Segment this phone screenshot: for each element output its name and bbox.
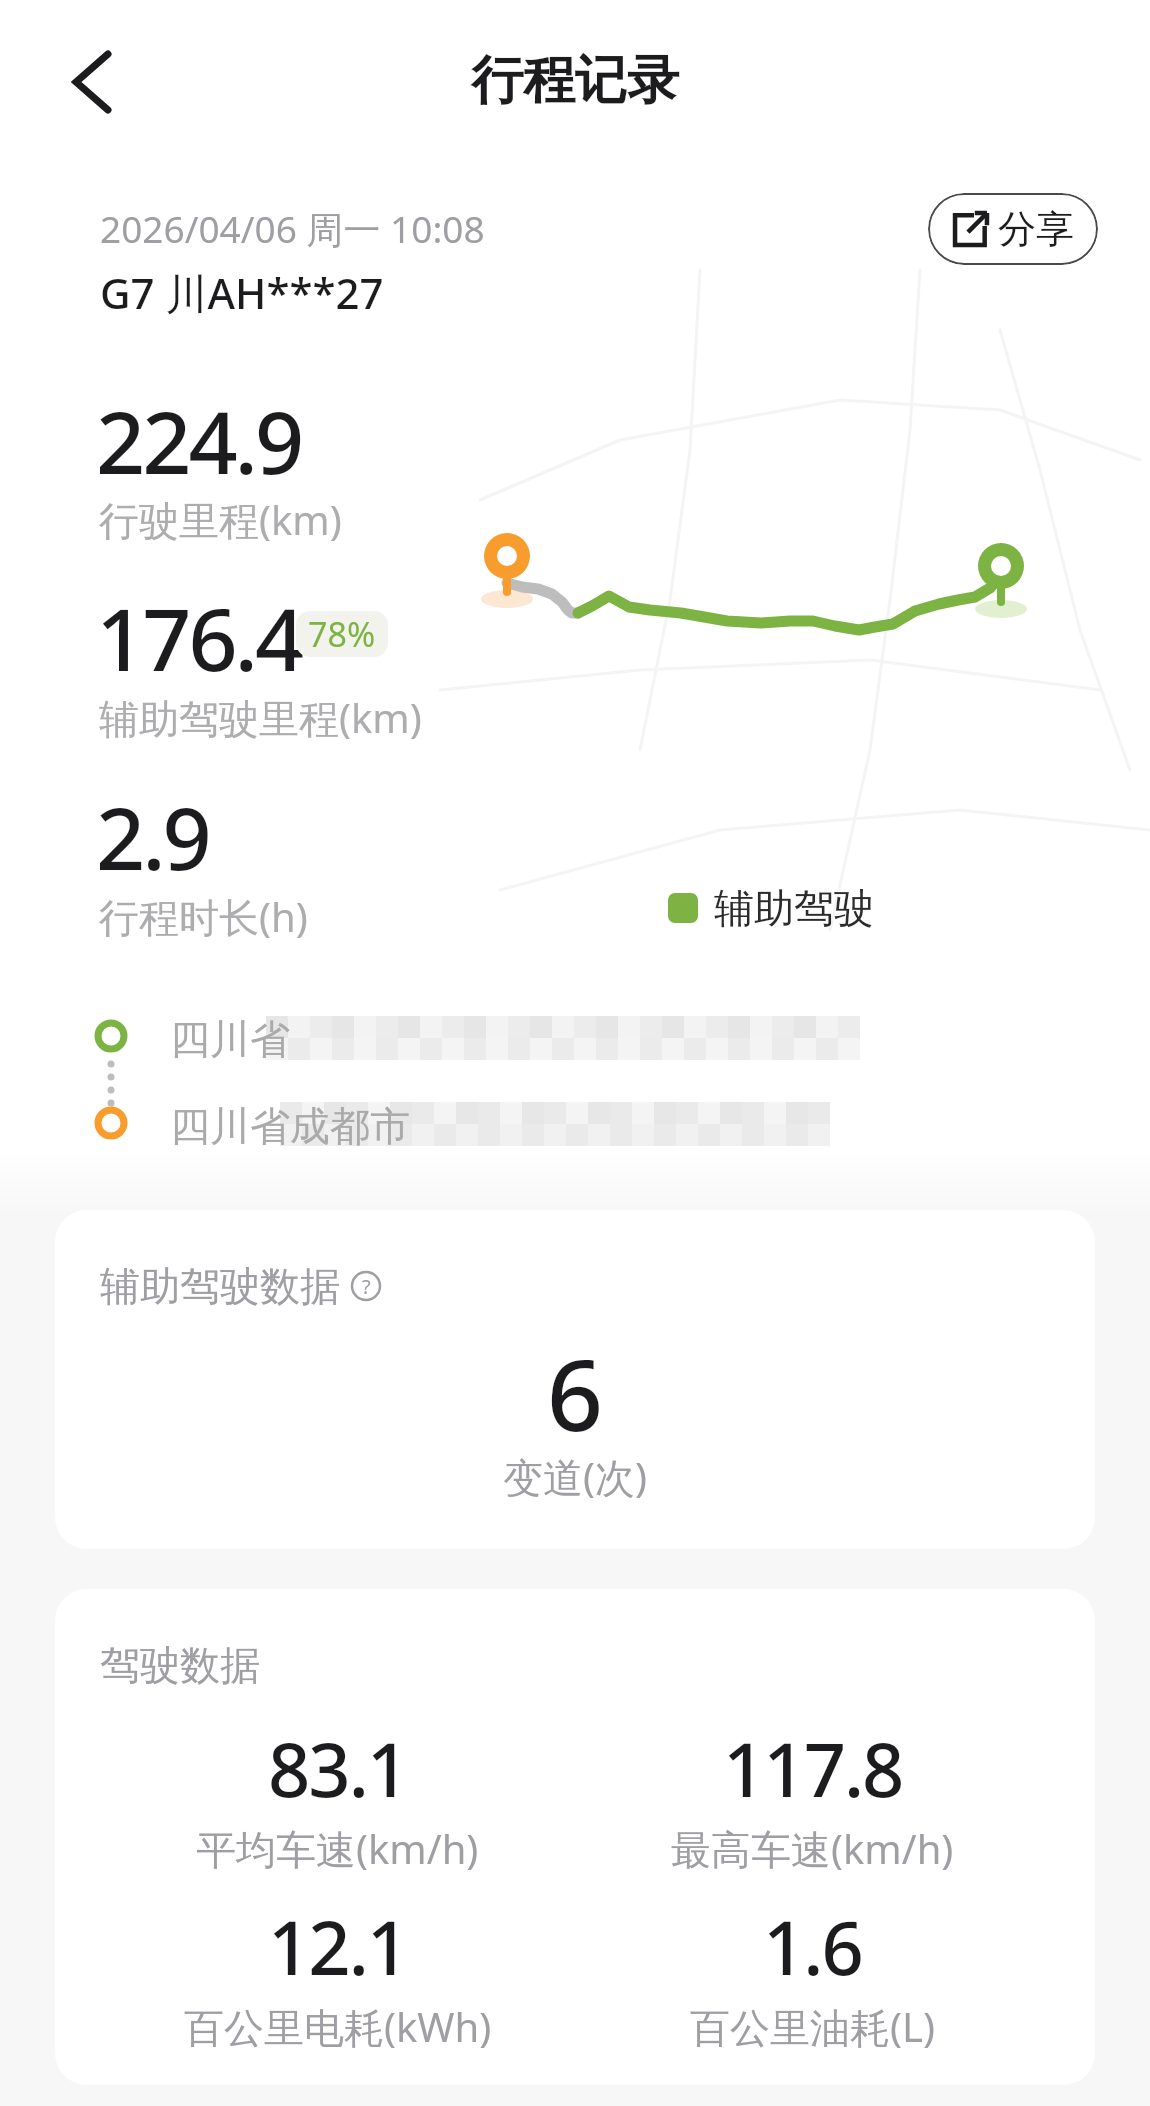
staticText: 平均车速(km/h) xyxy=(196,1821,479,1876)
staticText: 行程记录 xyxy=(471,48,679,114)
staticText: 224.9 xyxy=(96,382,302,499)
staticText: 四川省成都市 xyxy=(170,1101,410,1151)
staticText: 百公里油耗(L) xyxy=(690,1999,935,2054)
button[interactable]: 分享 xyxy=(928,193,1098,265)
staticText: 行程时长(h) xyxy=(99,889,308,944)
staticText: 78% xyxy=(308,611,376,657)
staticText: 百公里电耗(kWh) xyxy=(184,1999,492,2054)
staticText: 分享 xyxy=(998,205,1074,253)
staticText: 1.6 xyxy=(763,1896,862,1997)
staticText: 2026/04/06 周一 10:08 xyxy=(100,203,485,254)
staticText: 12.1 xyxy=(268,1896,408,1997)
staticText: ? xyxy=(362,1273,371,1300)
staticText: 83.1 xyxy=(268,1718,408,1819)
staticText: 辅助驾驶数据 xyxy=(100,1261,340,1311)
staticText: 变道(次) xyxy=(503,1449,647,1504)
staticText: 驾驶数据 xyxy=(100,1640,260,1690)
staticText: 辅助驾驶里程(km) xyxy=(99,690,422,745)
staticText: 四川省 xyxy=(170,1014,290,1064)
staticText: G7 川AH***27 xyxy=(100,264,384,321)
staticText: 辅助驾驶 xyxy=(714,883,874,933)
staticText: 117.8 xyxy=(723,1718,903,1819)
button[interactable] xyxy=(60,40,124,124)
staticText: 最高车速(km/h) xyxy=(671,1821,954,1876)
staticText: 2.9 xyxy=(96,778,209,895)
staticText: 6 xyxy=(547,1326,604,1459)
staticText: 176.4 xyxy=(96,579,302,696)
staticText: 行驶里程(km) xyxy=(99,492,342,547)
